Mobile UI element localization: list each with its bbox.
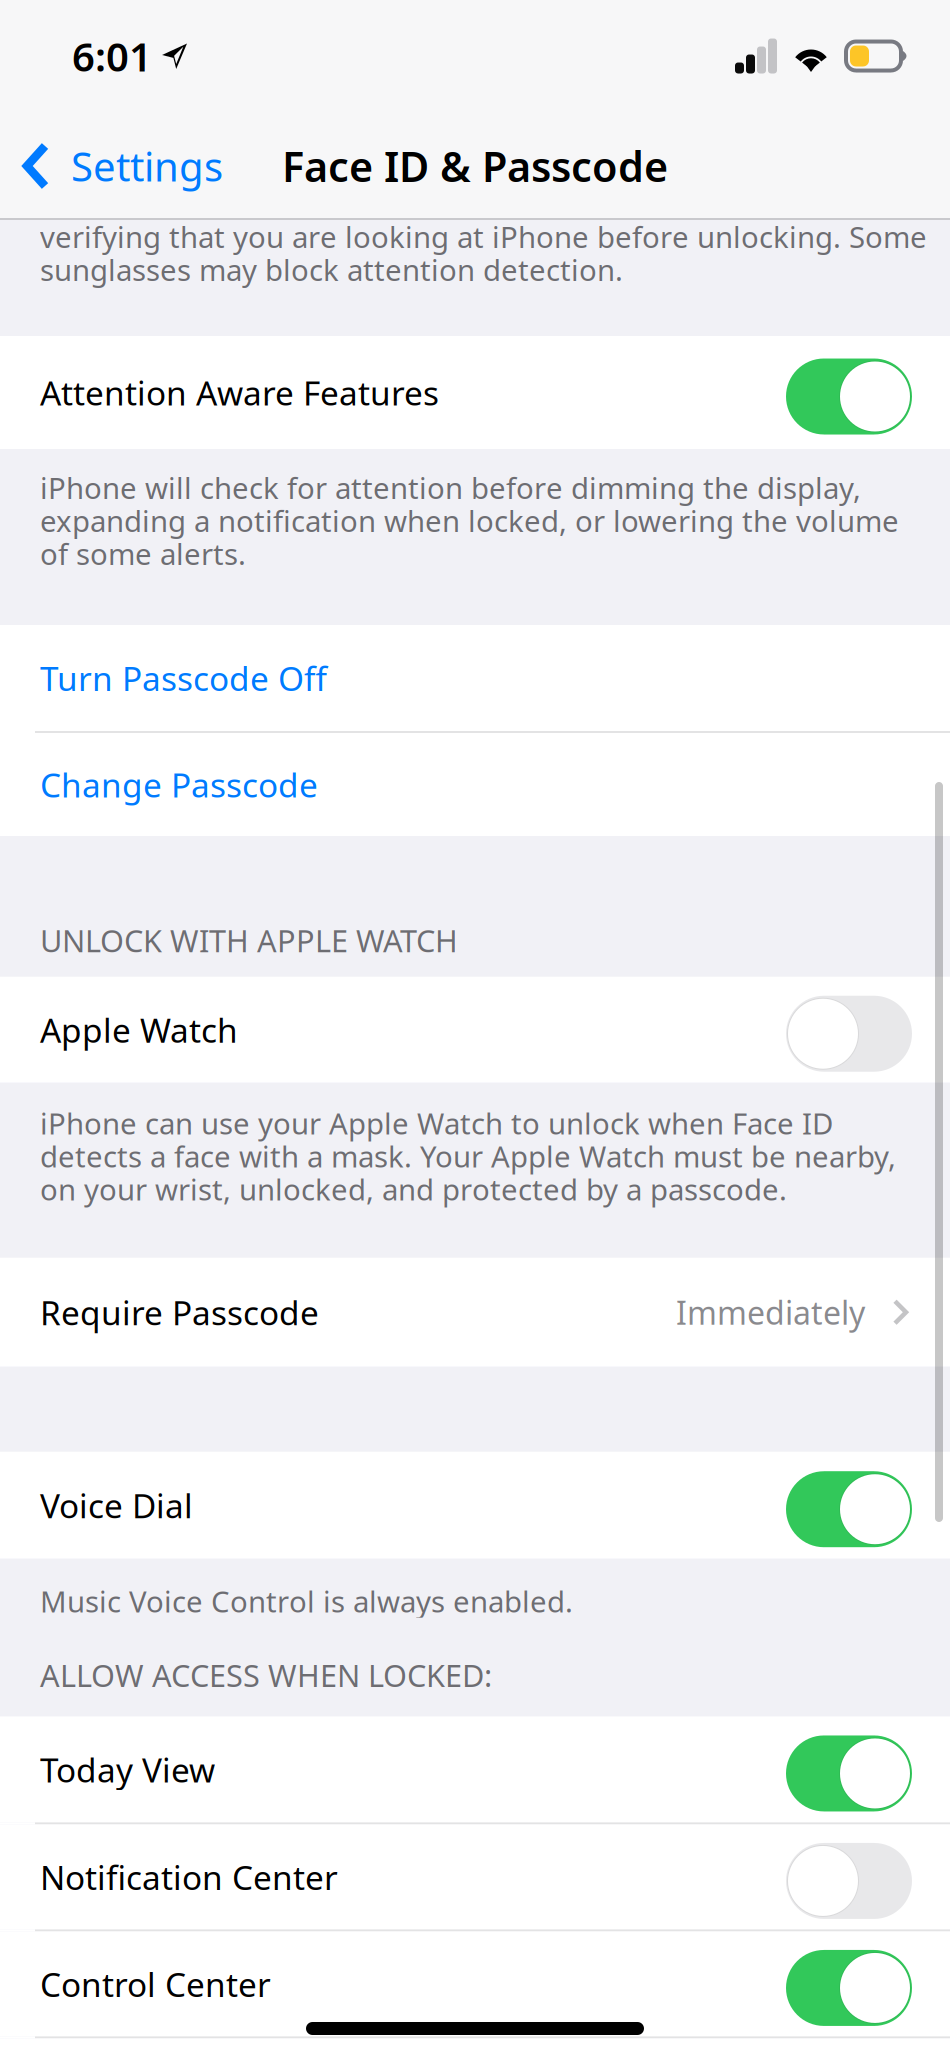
staticText: UNLOCK WITH APPLE WATCH bbox=[40, 920, 458, 961]
staticText: Voice Dial bbox=[40, 1483, 193, 1527]
button[interactable]: Settings bbox=[0, 112, 241, 220]
staticText: Today View bbox=[40, 1747, 215, 1792]
staticText: Attention Aware Features bbox=[40, 370, 439, 415]
button[interactable]: Today View bbox=[0, 1716, 950, 1822]
button[interactable]: Change Passcode bbox=[0, 733, 950, 836]
staticText: Immediately bbox=[676, 1291, 865, 1333]
staticText: Notification Center bbox=[40, 1855, 338, 1899]
staticText: Apple Watch bbox=[40, 1008, 238, 1052]
staticText: Change Passcode bbox=[40, 762, 318, 807]
staticText: of some alerts. bbox=[40, 534, 246, 573]
staticText: Face ID & Passcode bbox=[282, 139, 668, 193]
button[interactable]: Require Passcode bbox=[0, 1258, 950, 1367]
staticText: expanding a notification when locked, or… bbox=[40, 501, 899, 540]
button[interactable]: Attention Aware Features bbox=[0, 336, 950, 449]
staticText: on your wrist, unlocked, and protected b… bbox=[40, 1170, 787, 1209]
staticText: Settings bbox=[71, 139, 223, 192]
button[interactable]: Apple Watch bbox=[0, 977, 950, 1083]
staticText: sunglasses may block attention detection… bbox=[40, 250, 623, 289]
staticText: Control Center bbox=[40, 1962, 271, 2006]
button[interactable]: Voice Dial bbox=[0, 1452, 950, 1559]
button[interactable]: Turn Passcode Off bbox=[0, 625, 950, 731]
staticText: Music Voice Control is always enabled. bbox=[40, 1582, 573, 1621]
staticText: detects a face with a mask. Your Apple W… bbox=[40, 1137, 896, 1176]
staticText: 6:01 bbox=[72, 29, 152, 82]
staticText: iPhone will check for attention before d… bbox=[40, 468, 861, 507]
staticText: iPhone can use your Apple Watch to unloc… bbox=[40, 1104, 833, 1143]
button[interactable]: Notification Center bbox=[0, 1824, 950, 1929]
staticText: ALLOW ACCESS WHEN LOCKED: bbox=[40, 1655, 492, 1695]
button[interactable]: Control Center bbox=[0, 1931, 950, 2036]
staticText: Require Passcode bbox=[40, 1290, 319, 1334]
staticText: Turn Passcode Off bbox=[40, 656, 327, 700]
staticText: verifying that you are looking at iPhone… bbox=[40, 217, 927, 256]
